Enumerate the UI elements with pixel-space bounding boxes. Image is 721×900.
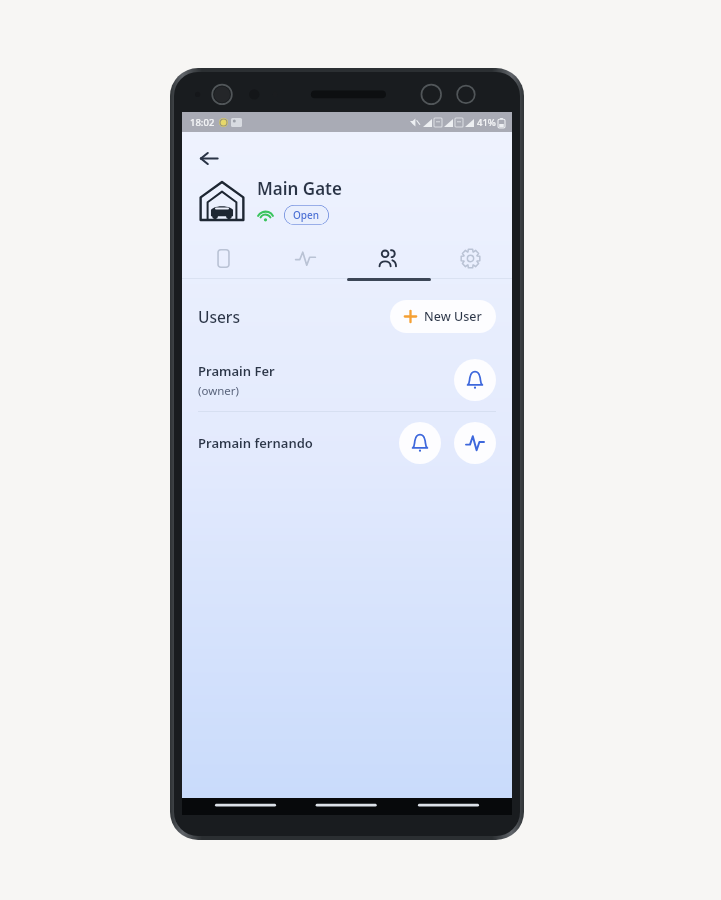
button[interactable]: Activity [264, 238, 346, 278]
staticText: Open [293, 208, 320, 222]
button[interactable]: Settings [429, 238, 512, 278]
staticText: Pramain Fer [198, 362, 275, 380]
staticText: 41% [477, 116, 496, 129]
staticText: 18:02 [190, 116, 215, 129]
button[interactable]: Notifications [399, 422, 441, 464]
button[interactable]: Device [182, 238, 264, 278]
button[interactable]: Pramain Fer [182, 349, 512, 411]
button[interactable]: Activity [454, 422, 496, 464]
staticText: Pramain fernando [198, 434, 313, 452]
button[interactable]: Notifications [454, 359, 496, 401]
staticText: New User [424, 308, 482, 325]
button[interactable]: Users [346, 238, 429, 278]
staticText: Main Gate [257, 177, 342, 200]
staticText: (owner) [198, 383, 240, 399]
staticText: Users [198, 306, 240, 327]
button[interactable]: New User [390, 300, 496, 333]
button[interactable]: Pramain fernando [182, 412, 512, 474]
button[interactable]: Back [191, 141, 225, 175]
